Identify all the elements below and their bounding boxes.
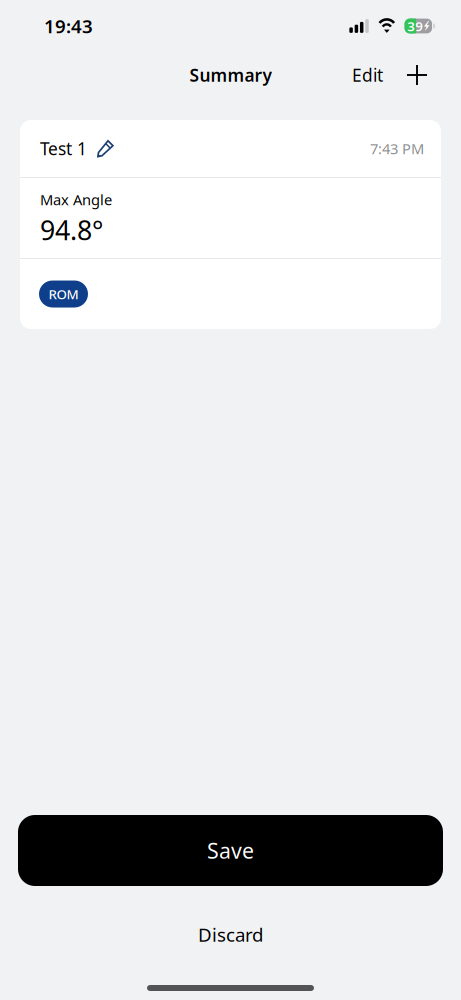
button[interactable]: Save <box>18 815 443 886</box>
staticText: Edit <box>352 63 383 86</box>
staticText: Test 1 <box>40 137 87 160</box>
staticText: Save <box>207 836 254 865</box>
staticText: ROM <box>48 285 78 303</box>
staticText: 7:43 PM <box>370 139 424 158</box>
staticText: Discard <box>198 922 263 947</box>
button[interactable]: Add <box>383 56 427 94</box>
button[interactable]: Discard <box>0 910 461 959</box>
staticText: Summary <box>189 63 271 86</box>
button[interactable]: ROM <box>39 280 88 307</box>
staticText: 94.8° <box>40 212 103 248</box>
staticText: 39 <box>407 17 423 35</box>
button[interactable]: Edit <box>352 54 383 95</box>
button[interactable]: Rename Test 1 <box>40 137 114 160</box>
staticText: 19:43 <box>44 14 93 38</box>
staticText: Max Angle <box>40 190 112 209</box>
